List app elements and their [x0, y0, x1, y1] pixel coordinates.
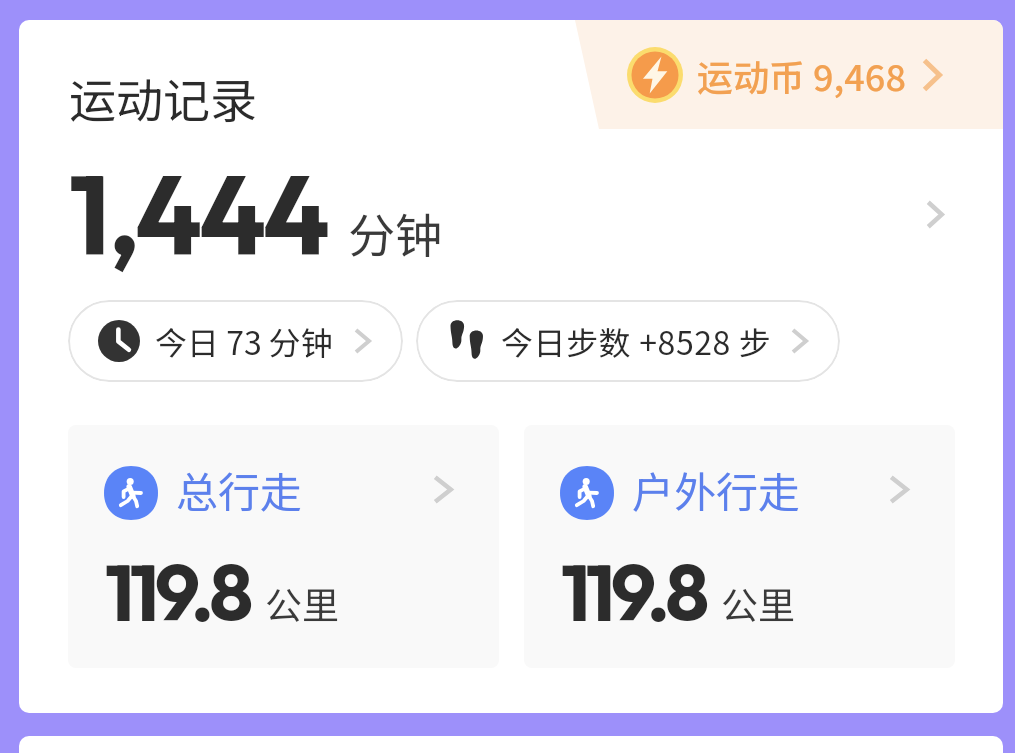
other: Today steps: [450, 320, 484, 362]
button[interactable]: [584, 20, 1003, 129]
staticText: 运动记录: [69, 63, 257, 131]
staticText: 今日步数 +8528 步: [501, 318, 772, 364]
staticText: 总行走: [176, 459, 303, 520]
staticText: 119.8: [561, 542, 705, 642]
staticText: 运动币 9,468: [697, 49, 906, 101]
staticText: 1,444: [69, 144, 328, 274]
staticText: 户外行走: [632, 459, 801, 520]
staticText: 今日 73 分钟: [155, 318, 333, 364]
staticText: 119.8: [105, 542, 249, 642]
button[interactable]: 户外行走: [524, 425, 955, 668]
button[interactable]: Today steps: [416, 300, 840, 382]
staticText: 公里: [721, 576, 795, 630]
button[interactable]: 1,444: [19, 138, 1003, 268]
button[interactable]: Today minutes: [68, 300, 403, 382]
button[interactable]: 总行走: [68, 425, 499, 668]
other: Sport coins: [627, 47, 683, 103]
staticText: 分钟: [348, 198, 442, 266]
other: Today minutes: [98, 320, 140, 362]
staticText: 公里: [265, 576, 339, 630]
